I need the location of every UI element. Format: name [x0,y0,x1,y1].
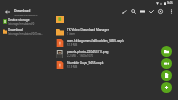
button[interactable]: Device storage [0,16,55,27]
staticText: /storage/emulated/0 [14,13,38,16]
staticText: Stumble Guys_9455.xapk [67,61,104,65]
button[interactable]: Grid view [138,6,147,17]
button[interactable]: Add [161,82,172,93]
staticText: 51.9 MB [67,65,78,69]
staticText: pexels-photo-220453 (1).png [67,50,109,54]
staticText: /storage/emulated/0/Dow... [8,32,43,36]
button[interactable]: Sort [120,6,129,17]
staticText: 1 item [67,32,75,36]
staticText: Download [14,8,31,13]
staticText: Device storage [8,18,30,22]
staticText: TK Video Download Manager [67,28,110,32]
staticText: 9:46 [167,1,173,5]
button[interactable]: Back [0,6,14,17]
button[interactable]: com.kitkagames.fallbuddies_9455.xapk [55,37,178,48]
button[interactable]: New folder [161,46,172,57]
staticText: 2.2 MB - 1600x1070 [67,54,94,58]
button[interactable]: Stumble Guys_9455.xapk [55,59,178,70]
button[interactable]: Download [0,26,55,37]
button[interactable]: More options [167,6,176,17]
button[interactable]: Record video [161,58,172,69]
staticText: 51.9 MB [67,43,78,47]
button[interactable]: Settings [156,6,165,17]
staticText: /storage/emulated/0 [8,22,35,26]
button[interactable]: New file [161,70,172,81]
button[interactable]: Search [129,6,138,17]
button[interactable]: TK Video Download Manager [55,26,178,37]
staticText: com.kitkagames.fallbuddies_9455.xapk [67,39,124,43]
staticText: Download [8,28,23,32]
button[interactable]: Select all [147,6,156,17]
button[interactable]: pexels-photo-220453 (1).png [55,48,178,59]
